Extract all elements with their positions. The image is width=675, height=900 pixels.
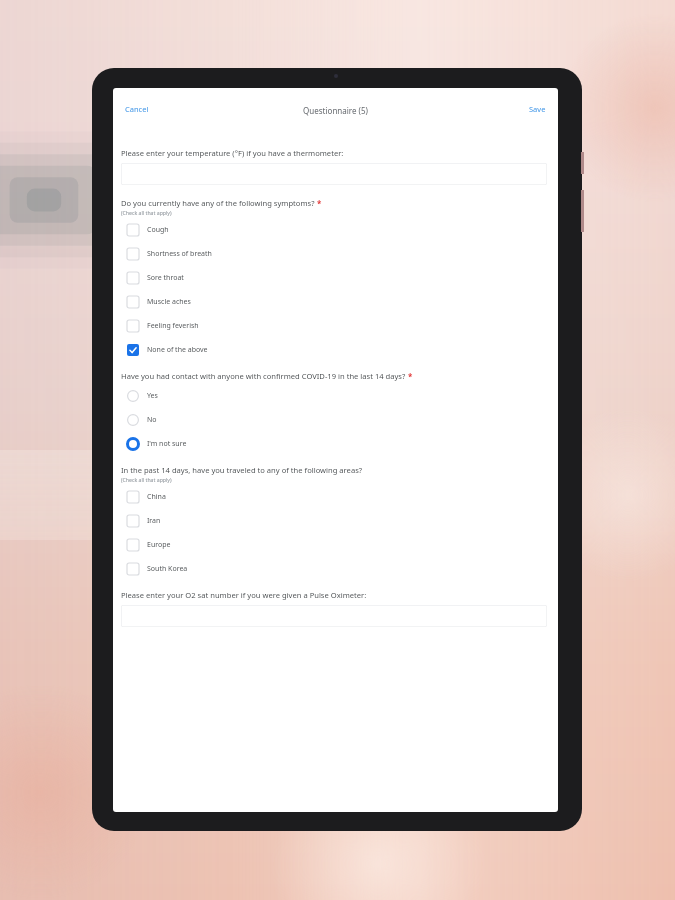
staticText: Have you had contact with anyone with co… xyxy=(121,371,406,381)
button[interactable] xyxy=(121,163,547,185)
staticText: Do you currently have any of the followi… xyxy=(121,198,315,208)
button[interactable]: Muscle aches xyxy=(121,290,547,314)
staticText: Yes xyxy=(147,391,158,401)
staticText: Feeling feverish xyxy=(147,321,199,331)
staticText: None of the above xyxy=(147,345,208,355)
button[interactable]: South Korea xyxy=(121,557,547,581)
button[interactable]: Sore throat xyxy=(121,266,547,290)
button[interactable]: Save xyxy=(521,98,554,120)
staticText: * xyxy=(408,371,413,382)
staticText: No xyxy=(147,415,157,425)
staticText: China xyxy=(147,492,166,502)
button[interactable]: Cough xyxy=(121,218,547,242)
button[interactable] xyxy=(121,605,547,627)
button[interactable]: Feeling feverish xyxy=(121,314,547,338)
staticText: * xyxy=(317,198,322,209)
button[interactable]: None of the above xyxy=(121,338,547,362)
button[interactable]: China xyxy=(121,485,547,509)
button[interactable]: Cancel xyxy=(117,98,157,120)
staticText: Save xyxy=(529,104,546,114)
button[interactable]: Yes xyxy=(121,384,547,408)
staticText: Questionnaire (5) xyxy=(303,105,368,116)
staticText: Please enter your O2 sat number if you w… xyxy=(121,590,367,600)
staticText: Shortness of breath xyxy=(147,249,212,259)
staticText: Sore throat xyxy=(147,273,184,283)
button[interactable]: Shortness of breath xyxy=(121,242,547,266)
button[interactable]: Iran xyxy=(121,509,547,533)
staticText: Please enter your temperature (°F) if yo… xyxy=(121,148,344,158)
staticText: Europe xyxy=(147,540,171,550)
staticText: (Check all that apply) xyxy=(121,476,172,483)
staticText: South Korea xyxy=(147,564,188,574)
staticText: In the past 14 days, have you traveled t… xyxy=(121,465,363,475)
staticText: (Check all that apply) xyxy=(121,209,172,216)
staticText: Cough xyxy=(147,225,169,235)
staticText: I'm not sure xyxy=(147,439,187,449)
button[interactable]: Europe xyxy=(121,533,547,557)
button[interactable]: I'm not sure xyxy=(121,432,547,456)
staticText: Iran xyxy=(147,516,161,526)
staticText: Cancel xyxy=(125,104,149,114)
button[interactable]: No xyxy=(121,408,547,432)
staticText: Muscle aches xyxy=(147,297,191,307)
